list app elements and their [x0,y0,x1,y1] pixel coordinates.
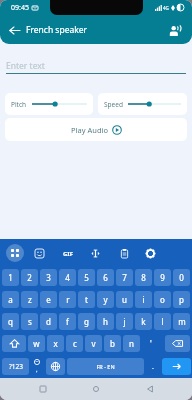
button[interactable]: u [116,291,133,308]
button[interactable]: GIF [60,247,76,261]
button[interactable]: q [2,313,19,330]
button[interactable]: z [21,291,38,308]
staticText: 9 [160,272,165,283]
button[interactable]: 6 [97,269,114,286]
button[interactable]: g [78,313,95,330]
button[interactable]: Emoji [31,245,47,261]
button[interactable]: . [145,358,160,375]
staticText: e [46,294,51,305]
button[interactable]: enter [162,358,191,375]
button[interactable]: Speed [98,93,187,115]
staticText: a [8,294,13,305]
staticText: FR - EN [96,363,115,370]
button[interactable]: Apps [6,244,24,262]
staticText: l [161,316,164,327]
button[interactable]: ' [142,335,159,352]
staticText: q [8,316,13,327]
staticText: f [66,316,69,327]
button[interactable]: 9 [154,269,171,286]
staticText: . [152,362,154,372]
button[interactable]: n [123,335,140,352]
button[interactable]: w [28,335,45,352]
staticText: ' [150,338,152,349]
staticText: 8 [141,272,146,283]
button[interactable]: 5 [78,269,95,286]
staticText: d [46,316,51,327]
staticText: c [73,338,77,349]
button[interactable]: del [165,335,190,352]
button[interactable]: c [66,335,83,352]
staticText: , [36,366,38,374]
staticText: 3 [46,272,51,283]
button[interactable]: k [135,313,152,330]
staticText: 2 [27,272,32,283]
button[interactable]: h [97,313,114,330]
staticText: Enter text [6,60,45,72]
staticText: g [84,316,89,327]
button[interactable]: shift [2,335,26,352]
staticText: s [28,316,32,327]
button[interactable]: Recents [32,378,54,400]
button[interactable]: 4 [59,269,76,286]
button[interactable]: ?123 [2,358,29,375]
button[interactable]: j [116,313,133,330]
staticText: b [110,338,115,349]
staticText: Pitch [11,100,27,109]
staticText: h [103,316,108,327]
button[interactable]: FR - EN [67,358,144,375]
button[interactable]: x [47,335,64,352]
button[interactable]: i [135,291,152,308]
button[interactable]: Pitch [5,93,93,115]
button[interactable]: l [154,313,171,330]
button[interactable]: Clipboard [116,245,132,261]
button[interactable]: Comma [28,358,46,375]
staticText: n [129,338,134,349]
button[interactable]: t [78,291,95,308]
staticText: 7 [122,272,127,283]
button[interactable]: 8 [135,269,152,286]
staticText: i [142,294,145,305]
staticText: 6 [103,272,108,283]
button[interactable]: 1 [2,269,19,286]
button[interactable]: Back [139,378,161,400]
button[interactable]: 0 [173,269,190,286]
staticText: o [160,294,165,305]
button[interactable]: o [154,291,171,308]
staticText: p [179,294,184,305]
staticText: z [28,294,32,305]
button[interactable]: Home [85,378,107,400]
button[interactable]: y [97,291,114,308]
button[interactable]: r [59,291,76,308]
button[interactable]: s [21,313,38,330]
button[interactable]: d [40,313,57,330]
staticText: k [141,316,146,327]
button[interactable]: 2 [21,269,38,286]
staticText: r [66,294,70,305]
staticText: GIF [63,250,73,258]
staticText: t [85,294,88,305]
button[interactable]: v [85,335,102,352]
button[interactable]: f [59,313,76,330]
button[interactable]: Text editing [87,245,103,261]
button[interactable]: Voice settings [166,21,184,39]
button[interactable]: m [173,313,190,330]
button[interactable]: a [2,291,19,308]
staticText: m [178,316,186,327]
button[interactable]: Back [6,22,22,38]
button[interactable]: e [40,291,57,308]
staticText: 4 [65,272,70,283]
staticText: Speed [104,100,123,109]
button[interactable]: globe [46,358,65,375]
button[interactable]: b [104,335,121,352]
button[interactable]: 3 [40,269,57,286]
staticText: v [91,338,96,349]
staticText: 1 [8,272,13,283]
staticText: y [103,294,108,305]
staticText: j [123,316,126,327]
button[interactable]: 7 [116,269,133,286]
button[interactable]: Settings [142,245,158,261]
staticText: 4G [163,5,169,11]
staticText: 09:45 [11,3,29,13]
button[interactable]: p [173,291,190,308]
button[interactable]: Play Audio [5,118,187,141]
